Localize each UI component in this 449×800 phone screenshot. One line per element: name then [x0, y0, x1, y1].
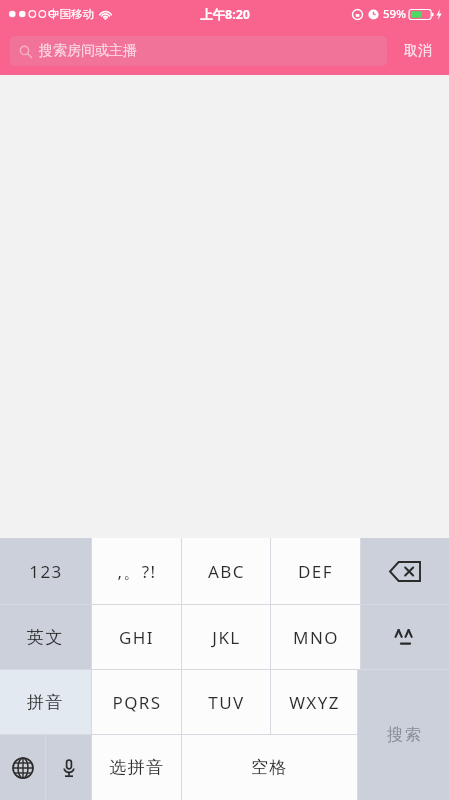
- staticText: 拼音: [27, 692, 64, 713]
- button[interactable]: 123: [0, 538, 91, 604]
- staticText: 搜索房间或主播: [39, 42, 137, 60]
- staticText: 中国移动: [48, 7, 94, 21]
- button[interactable]: TUV: [182, 670, 270, 734]
- button[interactable]: MNO: [271, 605, 360, 669]
- button[interactable]: 英文: [0, 605, 91, 669]
- button[interactable]: Voice input: [46, 735, 91, 800]
- staticText: 搜索: [386, 725, 422, 745]
- button[interactable]: GHI: [92, 605, 181, 669]
- staticText: 英文: [27, 627, 64, 648]
- staticText: TUV: [208, 691, 245, 714]
- staticText: WXYZ: [289, 691, 340, 714]
- button[interactable]: 选拼音: [92, 735, 181, 800]
- button[interactable]: DEF: [271, 538, 360, 604]
- button[interactable]: 空格: [182, 735, 357, 800]
- button[interactable]: Emoticons: [361, 605, 449, 669]
- button[interactable]: PQRS: [92, 670, 181, 734]
- staticText: 123: [29, 560, 63, 583]
- staticText: 选拼音: [109, 757, 165, 778]
- button[interactable]: ABC: [182, 538, 270, 604]
- button[interactable]: JKL: [182, 605, 270, 669]
- button[interactable]: 取消: [387, 31, 449, 71]
- button[interactable]: 拼音: [0, 670, 91, 734]
- staticText: 取消: [404, 42, 432, 60]
- staticText: 上午8:20: [200, 6, 250, 23]
- staticText: GHI: [119, 626, 154, 649]
- staticText: MNO: [293, 626, 339, 649]
- button[interactable]: Backspace: [361, 538, 449, 604]
- staticText: DEF: [298, 560, 333, 583]
- staticText: JKL: [212, 626, 241, 649]
- button[interactable]: ,。?!: [92, 538, 181, 604]
- staticText: ,。?!: [117, 560, 157, 583]
- staticText: 空格: [251, 757, 288, 778]
- button[interactable]: WXYZ: [271, 670, 357, 734]
- staticText: ABC: [208, 560, 245, 583]
- staticText: PQRS: [112, 691, 162, 714]
- button[interactable]: 搜索: [358, 670, 449, 800]
- button[interactable]: Switch language: [0, 735, 45, 800]
- button[interactable]: 搜索房间或主播: [10, 36, 387, 66]
- staticText: 59%: [383, 6, 406, 22]
